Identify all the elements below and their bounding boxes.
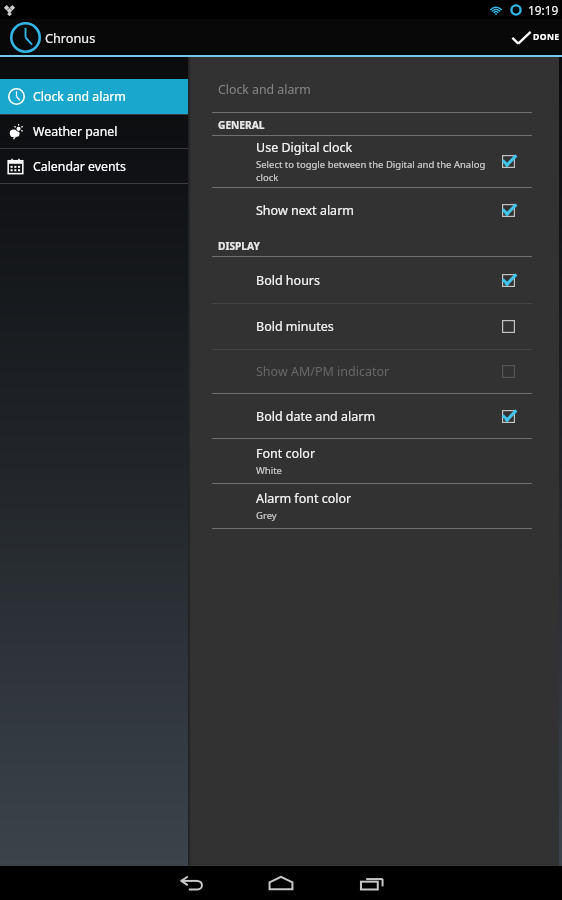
button[interactable]: Font color (188, 439, 559, 483)
staticText: Show next alarm (256, 202, 354, 219)
button[interactable]: Bold minutes (188, 304, 559, 349)
staticText: Bold date and alarm (256, 408, 376, 425)
staticText: Chronus (45, 29, 96, 46)
button[interactable]: Clock and alarm (0, 79, 188, 114)
staticText: Show AM/PM indicator (256, 363, 390, 380)
button[interactable]: Use Digital clock (188, 136, 559, 187)
staticText: Weather panel (33, 123, 118, 140)
staticText: Bold minutes (256, 318, 334, 335)
staticText: 19:19 (528, 2, 559, 18)
staticText: GENERAL (218, 118, 265, 132)
button[interactable]: Weather panel (0, 115, 188, 148)
staticText: DONE (533, 31, 560, 43)
staticText: White (256, 464, 282, 477)
staticText: Clock and alarm (218, 81, 311, 98)
button[interactable]: Show next alarm (501, 188, 559, 233)
button[interactable]: Back (162, 866, 228, 900)
button[interactable]: Use Digital clock (501, 136, 559, 187)
staticText: Calendar events (33, 158, 126, 175)
button[interactable]: Bold hours (188, 257, 559, 303)
button[interactable]: Recent apps (334, 866, 400, 900)
staticText: Use Digital clock (256, 139, 353, 156)
staticText: Clock and alarm (33, 88, 126, 105)
button[interactable]: DONE (498, 19, 562, 55)
button[interactable]: Show AM/PM indicator (188, 350, 559, 393)
button[interactable]: Calendar events (0, 149, 188, 183)
staticText: Alarm font color (256, 490, 352, 507)
button[interactable]: Bold date and alarm (188, 394, 559, 438)
staticText: Select to toggle between the Digital and… (256, 158, 499, 184)
button[interactable]: Alarm font color (188, 484, 559, 528)
button[interactable]: Bold hours (501, 257, 559, 303)
staticText: Bold hours (256, 272, 321, 289)
button[interactable]: Show next alarm (188, 188, 559, 233)
staticText: Font color (256, 445, 316, 462)
staticText: Grey (256, 509, 277, 522)
button[interactable]: Bold date and alarm (501, 394, 559, 438)
button[interactable]: Show AM/PM indicator (501, 350, 559, 393)
button[interactable]: Bold minutes (501, 304, 559, 349)
button[interactable]: Home (248, 866, 314, 900)
staticText: DISPLAY (218, 239, 260, 253)
